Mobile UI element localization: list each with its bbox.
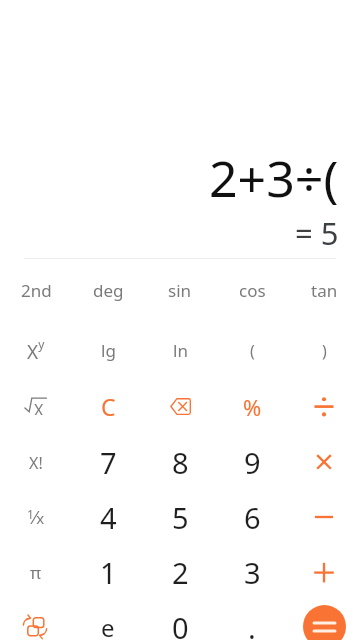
staticText: 7 xyxy=(100,443,117,482)
button[interactable]: 7 xyxy=(72,435,144,490)
button[interactable]: Divide xyxy=(288,379,360,434)
button[interactable]: square root xyxy=(0,379,72,434)
staticText: 0 xyxy=(172,608,189,640)
button[interactable]: ln xyxy=(144,323,216,378)
button[interactable]: 0 xyxy=(144,600,216,640)
button[interactable]: ( xyxy=(216,323,288,378)
button[interactable]: 1 xyxy=(72,545,144,600)
staticText: e xyxy=(101,611,115,640)
staticText: X! xyxy=(29,452,43,474)
button[interactable]: cos xyxy=(216,263,288,318)
button[interactable]: Delete xyxy=(144,379,216,434)
staticText: C xyxy=(101,391,116,422)
staticText: lg xyxy=(101,339,116,362)
staticText: 2nd xyxy=(21,279,52,302)
button[interactable]: C xyxy=(72,379,144,434)
button[interactable]: lg xyxy=(72,323,144,378)
button[interactable]: 6 xyxy=(216,490,288,545)
button[interactable]: X! xyxy=(0,435,72,490)
button[interactable]: 8 xyxy=(144,435,216,490)
button[interactable]: ) xyxy=(288,323,360,378)
staticText: 9 xyxy=(244,443,261,482)
button[interactable]: Equals xyxy=(303,605,346,640)
staticText: 1⁄x xyxy=(27,505,45,530)
staticText: % xyxy=(243,392,262,422)
button[interactable]: one divided by x xyxy=(0,490,72,545)
staticText: 3 xyxy=(244,553,261,592)
button[interactable]: 5 xyxy=(144,490,216,545)
button[interactable]: deg xyxy=(72,263,144,318)
staticText: 6 xyxy=(244,498,261,537)
staticText: tan xyxy=(311,279,338,302)
staticText: ( xyxy=(250,340,255,362)
button[interactable]: Plus xyxy=(288,545,360,600)
button[interactable]: 2 xyxy=(144,545,216,600)
staticText: ln xyxy=(173,339,188,362)
staticText: 1 xyxy=(100,553,117,592)
staticText: deg xyxy=(93,279,124,302)
staticText: cos xyxy=(239,279,266,302)
staticText: Xy xyxy=(27,336,45,365)
button[interactable]: 2nd xyxy=(0,263,72,318)
button[interactable]: % xyxy=(216,379,288,434)
button[interactable]: . xyxy=(216,600,288,640)
staticText: = 5 xyxy=(295,212,339,254)
staticText: 8 xyxy=(172,443,189,482)
staticText: ) xyxy=(322,340,327,362)
button[interactable]: π xyxy=(0,545,72,600)
staticText: π xyxy=(30,561,42,584)
button[interactable]: Minus xyxy=(288,490,360,545)
staticText: 5 xyxy=(172,498,189,537)
button[interactable]: 9 xyxy=(216,435,288,490)
button[interactable]: 4 xyxy=(72,490,144,545)
button[interactable]: e xyxy=(72,600,144,640)
button[interactable]: Unit converter xyxy=(0,600,72,640)
button[interactable]: 3 xyxy=(216,545,288,600)
button[interactable]: tan xyxy=(288,263,360,318)
staticText: . xyxy=(248,608,256,640)
button[interactable]: Multiply xyxy=(288,435,360,490)
staticText: X xyxy=(34,399,44,415)
button[interactable]: sin xyxy=(144,263,216,318)
button[interactable]: X to the power of y xyxy=(0,323,72,378)
staticText: 4 xyxy=(100,498,117,537)
staticText: sin xyxy=(168,279,192,302)
staticText: 2+3÷( xyxy=(209,144,339,212)
staticText: 2 xyxy=(172,553,189,592)
